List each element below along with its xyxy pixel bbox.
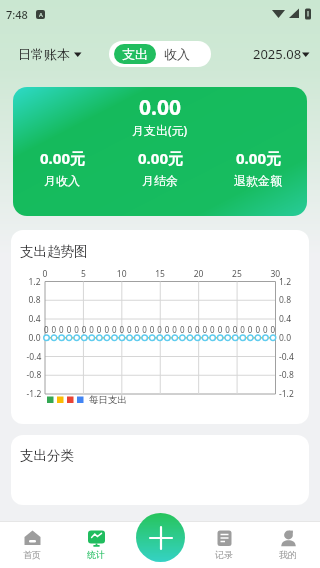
button[interactable]: 我的 [256,522,320,568]
staticText: 收入 [164,46,190,62]
button[interactable]: 日常账本 [18,46,82,62]
button[interactable]: 首页 [0,522,64,568]
staticText: 退款金额 [234,173,282,188]
button[interactable]: 2025.08 [253,45,310,63]
staticText: 统计 [87,549,105,560]
staticText: 支出 [122,46,148,62]
staticText: 0.00元 [138,148,183,168]
staticText: 我的 [279,549,297,560]
staticText: 月结余 [142,173,178,188]
button[interactable]: 统计 [64,522,128,568]
staticText: 月支出(元) [132,122,188,138]
button[interactable]: 支出 [114,44,156,64]
staticText: 支出趋势图 [20,243,88,260]
staticText: 支出分类 [20,447,74,464]
staticText: 2025.08 [253,45,302,63]
staticText: 日常账本 [18,46,70,62]
staticText: 0.00 [139,93,181,122]
button[interactable]: 记录 [192,522,256,568]
staticText: A [39,11,43,19]
button[interactable]: 收入 [164,46,190,62]
staticText: 0.00元 [40,148,85,168]
staticText: 0.00元 [236,148,281,168]
button[interactable] [136,513,185,562]
staticText: 记录 [215,549,233,560]
staticText: 7:48 [6,7,28,22]
staticText: 首页 [23,549,41,560]
staticText: 月收入 [44,173,80,188]
